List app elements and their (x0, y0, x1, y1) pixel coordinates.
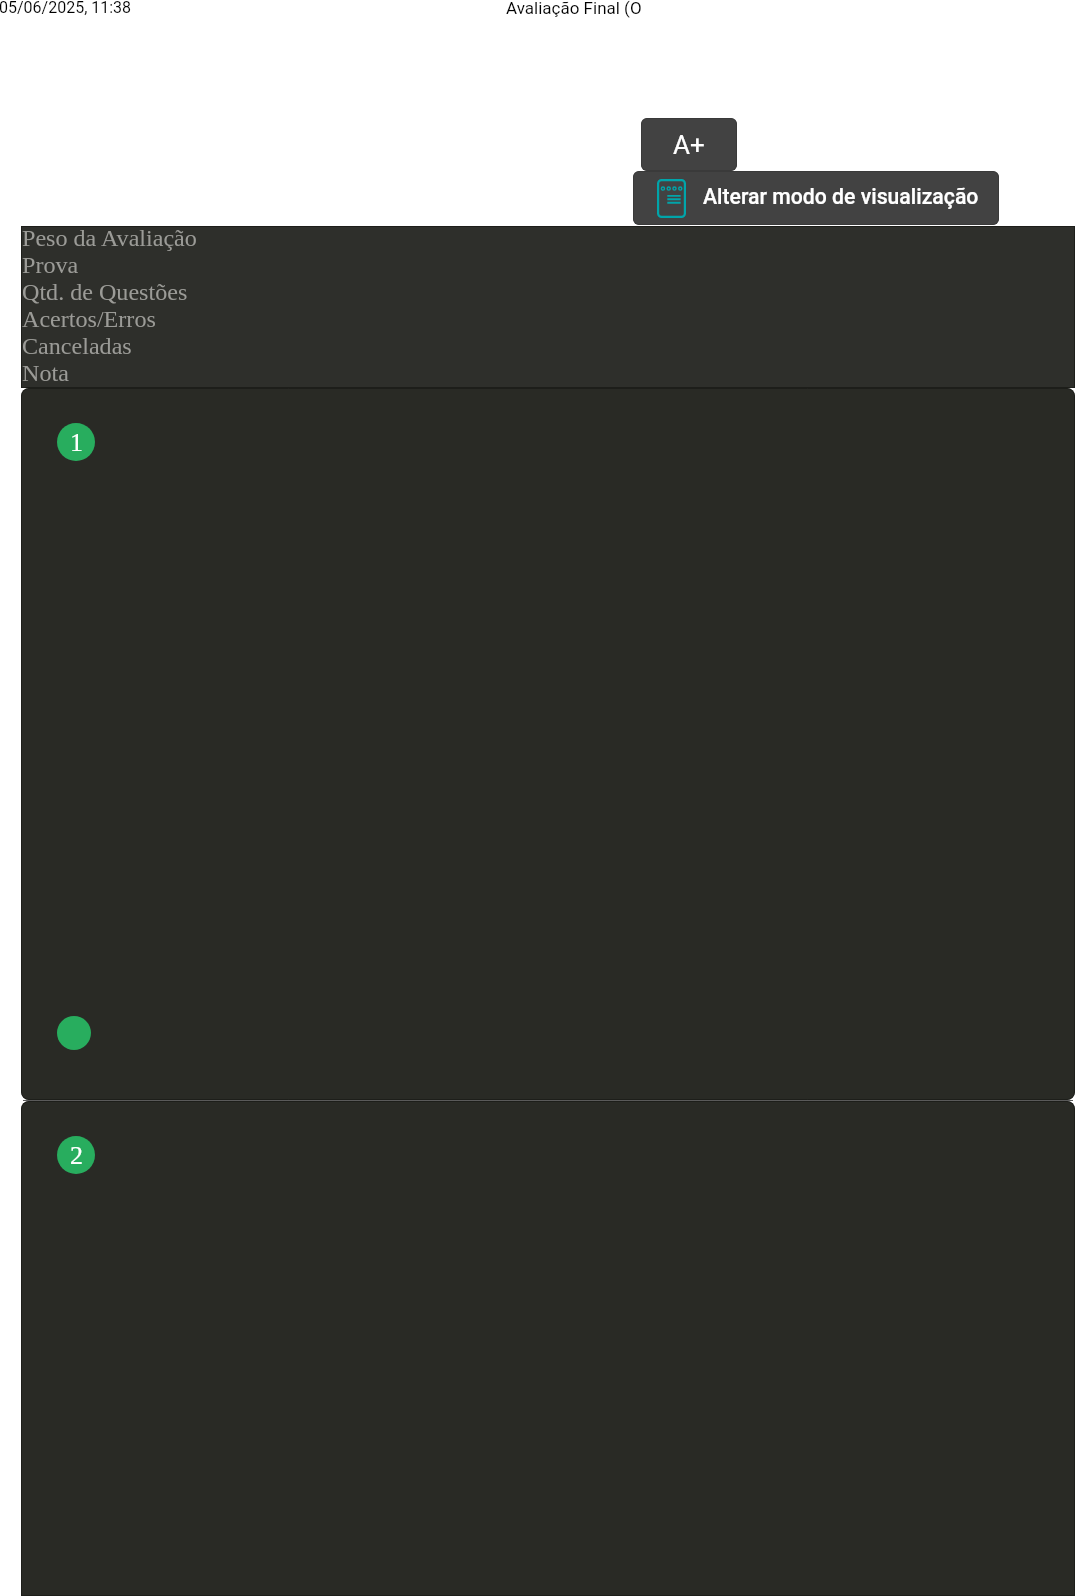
staticText: 2 (70, 1141, 83, 1170)
staticText: Qtd. de Questões (22, 279, 188, 306)
button[interactable]: Aumentar fonte (641, 118, 737, 171)
staticText: Nota (22, 360, 69, 387)
staticText: 1 (70, 428, 83, 457)
staticText: Alterar modo de visualização (703, 184, 979, 209)
staticText: Prova (22, 252, 79, 279)
button[interactable]: 1 (21, 388, 1075, 1100)
staticText: Peso da Avaliação (22, 225, 197, 252)
button[interactable]: 2 (21, 1101, 1075, 1596)
staticText: Canceladas (22, 333, 132, 360)
other: Alterar modo de visualização (657, 179, 686, 218)
staticText: 05/06/2025, 11:38 (0, 0, 132, 17)
staticText: A+ (673, 130, 705, 160)
staticText: Acertos/Erros (22, 306, 156, 333)
staticText: Avaliação Final (O (506, 0, 642, 18)
button[interactable]: Alterar modo de visualização (633, 171, 999, 225)
